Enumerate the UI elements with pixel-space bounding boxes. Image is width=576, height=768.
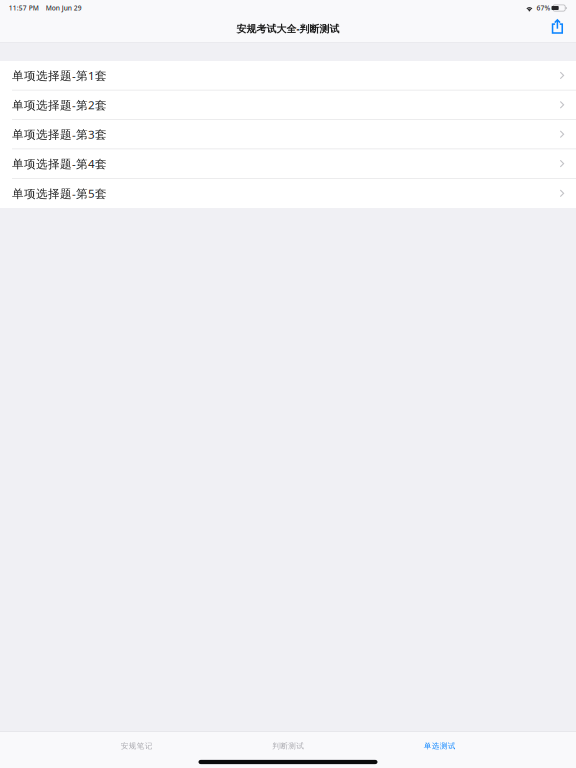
staticText: 安规考试大全-判断测试 xyxy=(236,22,339,35)
staticText: 安规笔记 xyxy=(121,741,153,751)
staticText: 单选测试 xyxy=(424,741,456,751)
button[interactable]: 单选测试 xyxy=(364,735,515,757)
staticText: 单项选择题-第2套 xyxy=(12,97,107,113)
staticText: 67% xyxy=(536,3,550,13)
button[interactable]: 单项选择题-第5套 xyxy=(0,179,576,208)
staticText: Mon Jun 29 xyxy=(46,3,82,13)
button[interactable]: 判断测试 xyxy=(212,735,364,757)
staticText: 单项选择题-第1套 xyxy=(12,67,107,83)
button[interactable]: 安规笔记 xyxy=(61,735,212,757)
staticText: 判断测试 xyxy=(272,741,304,751)
button[interactable]: 单项选择题-第1套 xyxy=(0,61,576,90)
staticText: 单项选择题-第3套 xyxy=(12,126,107,142)
staticText: 11:57 PM xyxy=(9,3,39,13)
button[interactable]: 单项选择题-第3套 xyxy=(0,120,576,149)
button[interactable]: Share xyxy=(545,15,569,43)
button[interactable]: 单项选择题-第4套 xyxy=(0,149,576,179)
staticText: 单项选择题-第4套 xyxy=(12,156,107,171)
staticText: 单项选择题-第5套 xyxy=(12,185,107,201)
button[interactable]: 单项选择题-第2套 xyxy=(0,90,576,120)
